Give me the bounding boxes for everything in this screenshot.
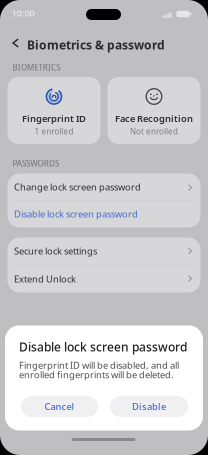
button[interactable]: Disable lock screen password <box>7 200 200 227</box>
staticText: Extend Unlock <box>14 273 76 285</box>
staticText: 1 enrolled <box>34 126 73 137</box>
button[interactable]: Face Recognition <box>107 77 200 144</box>
button[interactable]: Fingerprint ID <box>7 77 100 144</box>
staticText: enrolled fingerprints will be deleted. <box>19 368 174 381</box>
staticText: PASSWORDS <box>12 158 59 169</box>
staticText: Fingerprint ID will be disabled, and all <box>19 359 179 371</box>
button[interactable]: Secure lock settings <box>7 237 200 264</box>
staticText: Secure lock settings <box>14 245 97 257</box>
staticText: Cancel <box>44 400 74 413</box>
button[interactable]: Extend Unlock <box>7 265 200 293</box>
staticText: Biometrics & password <box>27 37 165 53</box>
button[interactable]: Cancel <box>21 396 98 417</box>
button[interactable]: Change lock screen password <box>7 173 200 200</box>
staticText: BIOMETRICS <box>12 62 60 73</box>
staticText: 10:00 <box>11 7 34 19</box>
staticText: Change lock screen password <box>14 181 141 193</box>
staticText: Disable lock screen password <box>14 208 138 220</box>
staticText: Disable lock screen password <box>19 339 187 355</box>
staticText: Disable <box>132 400 166 413</box>
staticText: Not enrolled <box>130 126 178 137</box>
staticText: Face Recognition <box>115 112 193 125</box>
button[interactable] <box>12 38 20 48</box>
button[interactable]: Disable <box>110 396 188 417</box>
staticText: Fingerprint ID <box>22 112 86 125</box>
